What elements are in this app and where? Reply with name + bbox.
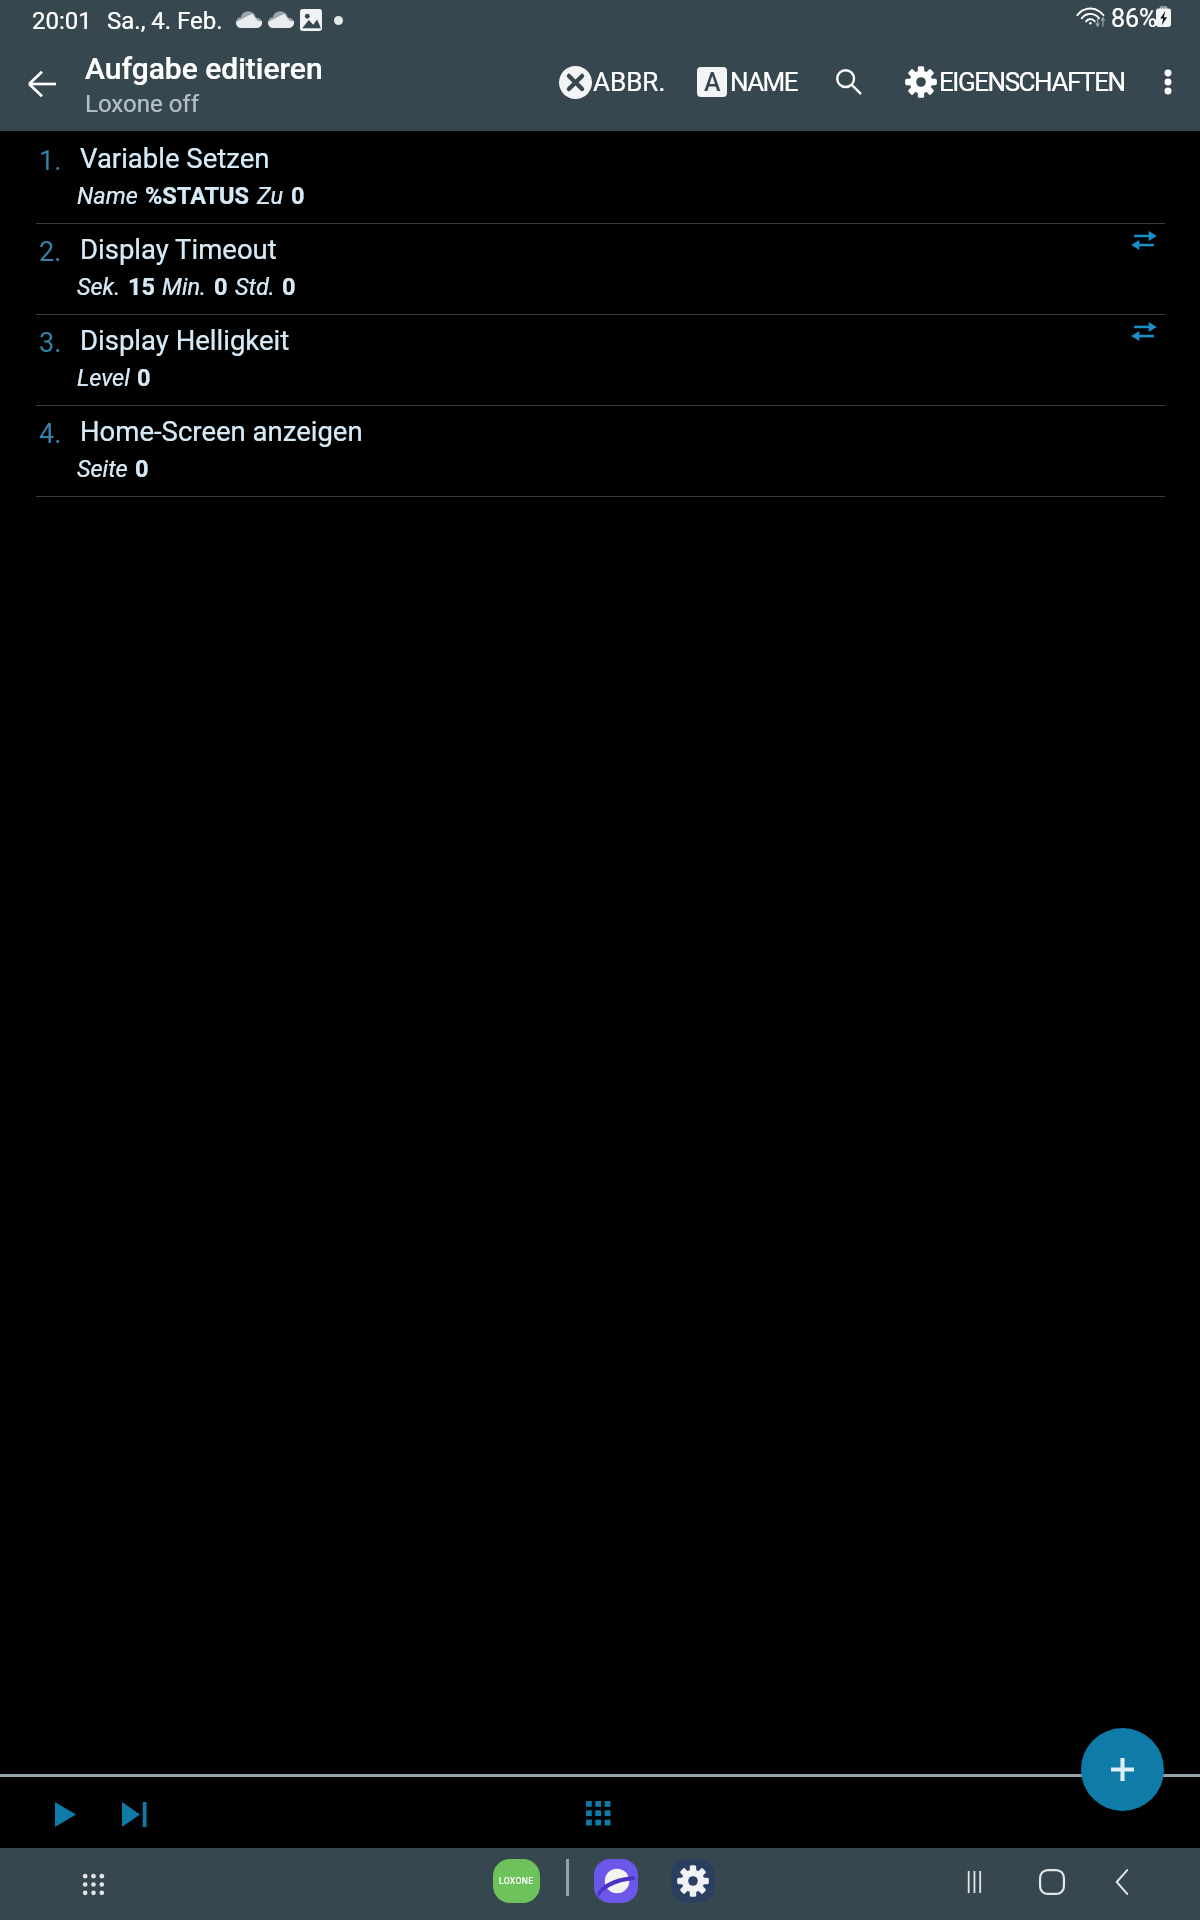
staticText: Seite (77, 455, 128, 483)
staticText: Sek. (77, 273, 121, 301)
staticText: %STATUS (145, 182, 250, 210)
button[interactable]: 4. (0, 406, 1200, 497)
staticText: Level (77, 364, 130, 392)
staticText: Aufgabe editieren (85, 51, 323, 86)
button[interactable]: Back (1098, 1858, 1146, 1906)
staticText: Display Helligkeit (80, 324, 290, 356)
button[interactable]: Settings (671, 1859, 715, 1903)
staticText: Name (77, 182, 138, 210)
staticText: LOXONE (499, 1876, 534, 1886)
button[interactable]: 2. (0, 224, 1200, 315)
staticText: 0 (135, 455, 149, 483)
staticText: Zu (257, 182, 284, 210)
staticText: 4. (39, 418, 62, 450)
staticText: Variable Setzen (80, 142, 270, 174)
staticText: 0 (291, 182, 305, 210)
staticText: 15 (128, 273, 155, 301)
button[interactable]: 3. (0, 315, 1200, 406)
button[interactable]: 1. (0, 133, 1200, 224)
staticText: Sa., 4. Feb. (107, 7, 223, 35)
staticText: A (704, 68, 721, 97)
staticText: 20:01 (32, 7, 92, 35)
button[interactable]: ABBR. (558, 60, 666, 104)
button[interactable]: Back (14, 56, 70, 112)
staticText: 86% (1111, 4, 1158, 33)
button[interactable]: Internet (594, 1859, 638, 1903)
button[interactable]: Recent apps (955, 1858, 1003, 1906)
button[interactable]: All apps (68, 1859, 118, 1909)
staticText: Home-Screen anzeigen (80, 415, 363, 447)
staticText: 0 (137, 364, 151, 392)
button[interactable]: Search (824, 60, 874, 104)
staticText: 0 (282, 273, 296, 301)
staticText: Display Timeout (80, 233, 277, 265)
staticText: EIGENSCHAFTEN (939, 67, 1125, 97)
button[interactable]: Play (37, 1786, 93, 1842)
button[interactable]: More options (1146, 58, 1190, 106)
button[interactable]: Add action (1081, 1728, 1164, 1811)
staticText: 2. (39, 236, 62, 268)
button[interactable]: Home (1028, 1858, 1076, 1906)
button[interactable]: Grid of actions (570, 1785, 630, 1845)
staticText: Std. (235, 273, 275, 301)
staticText: Min. (162, 273, 207, 301)
staticText: 0 (214, 273, 228, 301)
staticText: 1. (39, 145, 62, 177)
button[interactable]: A (697, 60, 797, 104)
staticText: 3. (39, 327, 62, 359)
button[interactable]: EIGENSCHAFTEN (903, 60, 1125, 104)
button[interactable]: Step forward (106, 1786, 162, 1842)
button[interactable]: Loxone app (493, 1859, 540, 1903)
button[interactable]: Swap values (1114, 224, 1174, 269)
staticText: ABBR. (593, 67, 666, 97)
staticText: Loxone off (85, 90, 200, 118)
button[interactable]: Swap values (1114, 315, 1174, 360)
staticText: NAME (730, 67, 797, 97)
